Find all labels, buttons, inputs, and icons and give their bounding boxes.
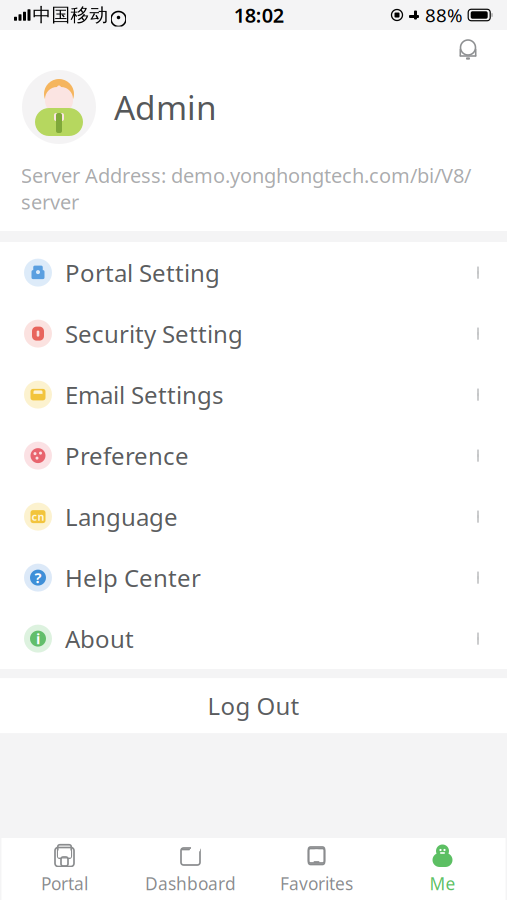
staticText: Server Address: demo.yonghongtech.com/bi… xyxy=(21,162,471,215)
staticText: Language xyxy=(65,501,178,533)
button[interactable]: Preference xyxy=(0,425,507,486)
staticText: Dashboard xyxy=(145,872,236,895)
staticText: Portal Setting xyxy=(65,257,220,289)
staticText: Preference xyxy=(65,440,189,472)
staticText: Me xyxy=(429,872,455,895)
staticText: About xyxy=(65,623,134,655)
staticText: Log Out xyxy=(207,690,299,722)
staticText: Favorites xyxy=(280,872,353,895)
staticText: 18:02 xyxy=(234,2,284,28)
button[interactable]: Favorites xyxy=(253,841,379,897)
button[interactable]: Notifications xyxy=(451,34,485,68)
staticText: i xyxy=(36,629,40,648)
button[interactable]: Dashboard xyxy=(127,841,253,897)
staticText: Email Settings xyxy=(65,379,223,411)
button[interactable]: i xyxy=(0,608,507,669)
button[interactable]: Email Settings xyxy=(0,364,507,425)
button[interactable]: ? xyxy=(0,547,507,608)
staticText: Admin xyxy=(114,85,217,129)
staticText: ? xyxy=(34,568,41,587)
staticText: cn xyxy=(31,509,44,524)
button[interactable]: Security Setting xyxy=(0,303,507,364)
staticText: Security Setting xyxy=(65,318,243,350)
button[interactable]: Portal Setting xyxy=(0,242,507,303)
staticText: Help Center xyxy=(65,562,201,594)
button[interactable]: Me xyxy=(379,841,505,897)
staticText: 88% xyxy=(425,3,463,27)
button[interactable]: cn xyxy=(0,486,507,547)
button[interactable]: Log Out xyxy=(0,678,507,733)
staticText: Portal xyxy=(41,872,88,895)
button[interactable]: Portal xyxy=(1,841,127,897)
staticText: 中国移动 xyxy=(32,3,108,26)
